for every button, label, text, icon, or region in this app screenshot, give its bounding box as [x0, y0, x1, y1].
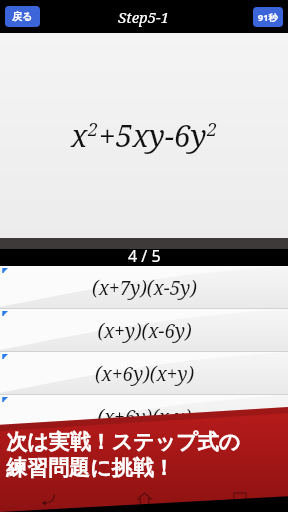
button[interactable]: 戻る [5, 6, 40, 27]
button[interactable]: 91秒 [253, 7, 283, 27]
button[interactable]: (x+7y)(x-5y) [0, 266, 288, 309]
button[interactable]: (x+6y)(x+y) [0, 352, 288, 395]
button[interactable]: (x+6y)(x-y) [0, 395, 288, 438]
button[interactable]: (x+y)(x-6y) [0, 309, 288, 352]
staticText: (x+6y)(x+y) [95, 361, 194, 387]
staticText: +5xy-6y [99, 115, 207, 156]
staticText: 2 [207, 117, 218, 142]
staticText: 練習問題に挑戦！ [6, 455, 175, 481]
staticText: 91秒 [258, 11, 278, 23]
staticText: x [71, 115, 88, 156]
staticText: (x+6y)(x-y) [97, 404, 192, 430]
staticText: 2 [88, 117, 99, 142]
staticText: Step5-1 [118, 7, 170, 27]
staticText: (x+7y)(x-5y) [92, 275, 197, 301]
staticText: 4 / 5 [128, 245, 161, 262]
button[interactable]: Home [129, 486, 159, 512]
button[interactable]: 次は実戦！ステップ式の [0, 407, 288, 512]
staticText: 次は実戦！ステップ式の [6, 429, 240, 455]
staticText: 戻る [12, 10, 33, 23]
button[interactable]: Recent apps [225, 486, 255, 512]
staticText: (x+y)(x-6y) [97, 318, 192, 344]
button[interactable]: Back [33, 486, 63, 512]
